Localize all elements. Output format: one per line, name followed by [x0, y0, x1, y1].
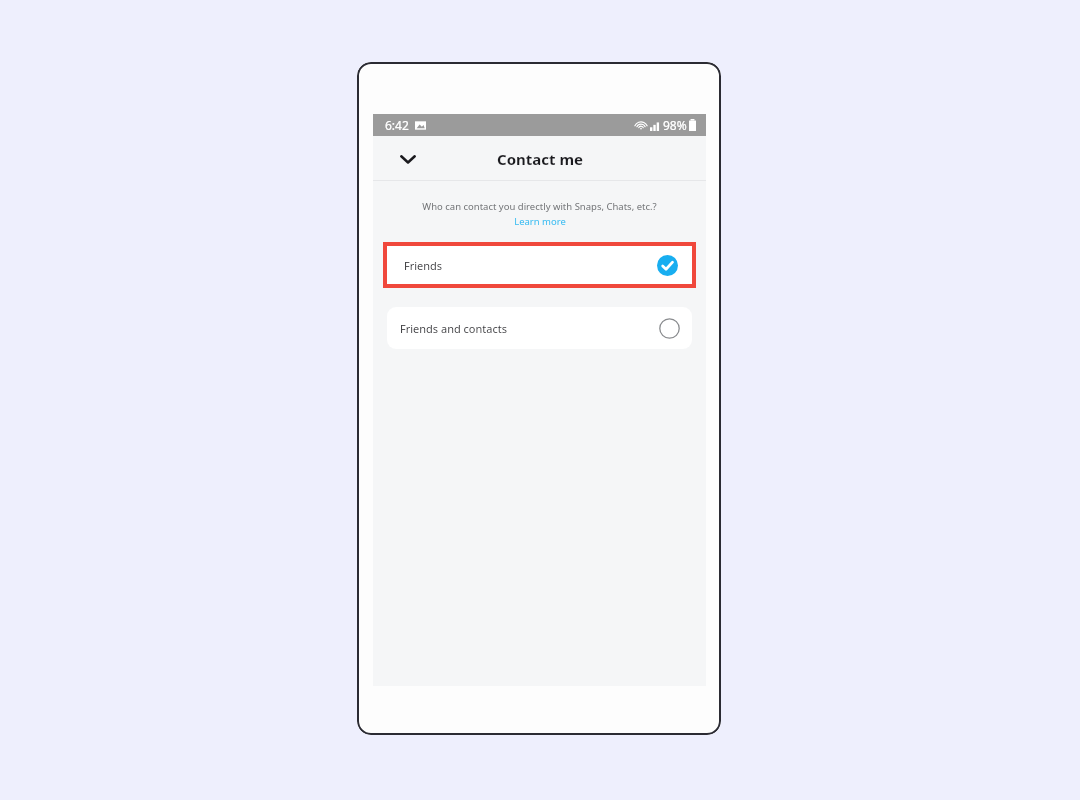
staticText: 98% [663, 117, 687, 133]
button[interactable]: Friends and contacts [387, 307, 692, 349]
staticText: Who can contact you directly with Snaps,… [422, 200, 657, 213]
button[interactable]: Learn more [514, 215, 566, 228]
staticText: Friends and contacts [400, 321, 507, 336]
staticText: Learn more [514, 215, 566, 228]
button[interactable]: Collapse [391, 142, 425, 176]
staticText: 6:42 [385, 117, 409, 133]
staticText: Contact me [497, 149, 583, 169]
staticText: Friends [404, 258, 443, 273]
button[interactable]: Friends [387, 246, 692, 284]
